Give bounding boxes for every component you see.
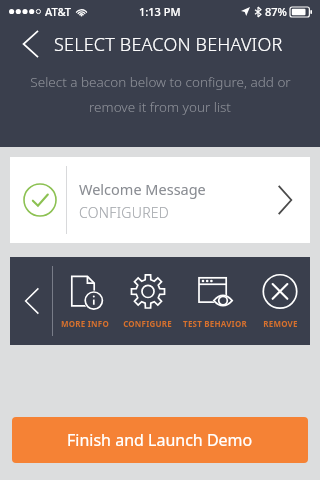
button[interactable]: MORE INFO (53, 274, 116, 329)
button[interactable]: Collapse actions (22, 286, 42, 316)
staticText: remove it from your list (89, 98, 231, 116)
button[interactable]: Back (20, 29, 42, 59)
staticText: MORE INFO (61, 318, 109, 329)
staticText: TEST BEHAVIOR (183, 318, 247, 329)
staticText: Welcome Message (79, 179, 206, 199)
button[interactable]: Welcome Message (10, 157, 310, 243)
staticText: AT&T (45, 4, 72, 19)
button[interactable]: Finish and Launch Demo (12, 417, 308, 463)
staticText: Select a beacon below to configure, add … (30, 73, 291, 91)
staticText: SELECT BEACON BEHAVIOR (54, 32, 283, 57)
staticText: Finish and Launch Demo (67, 429, 253, 451)
staticText: CONFIGURE (123, 318, 172, 329)
staticText: 87% (265, 4, 287, 19)
button[interactable]: CONFIGURE (116, 274, 179, 329)
button[interactable]: TEST BEHAVIOR (179, 274, 250, 329)
staticText: CONFIGURED (79, 203, 170, 222)
staticText: 1:13 PM (139, 4, 181, 19)
button[interactable]: REMOVE (250, 274, 310, 329)
staticText: REMOVE (263, 318, 298, 329)
